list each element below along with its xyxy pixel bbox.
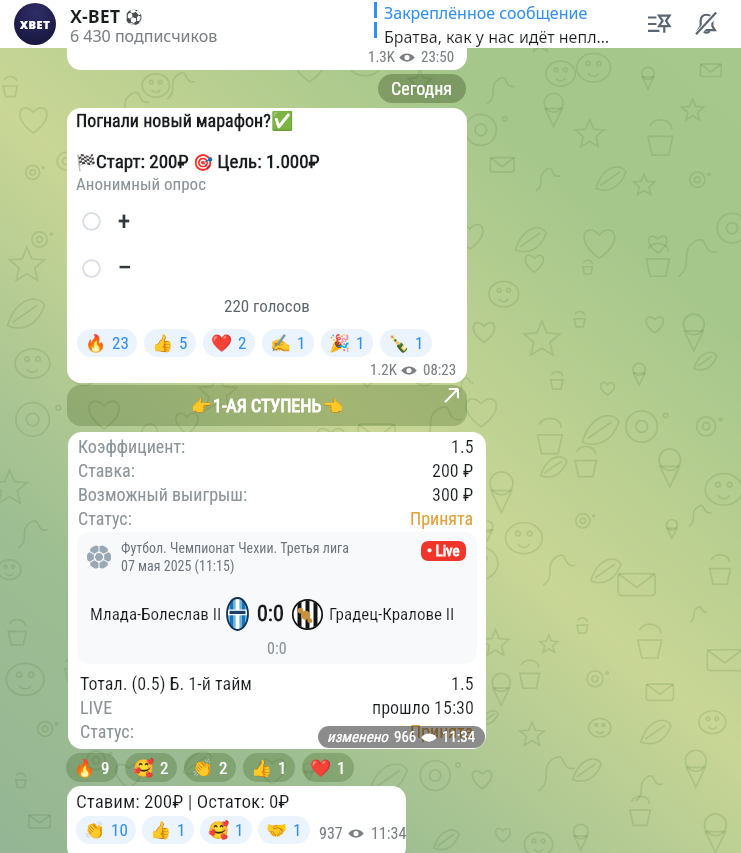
button[interactable]: 👏: [76, 816, 136, 844]
button[interactable]: 🍾: [380, 329, 432, 357]
button[interactable]: ❤️: [302, 753, 354, 782]
staticText: 🏁: [76, 153, 96, 172]
staticText: Тотал. (0.5) Б. 1-й тайм: [80, 673, 252, 694]
button[interactable]: –: [67, 250, 467, 286]
staticText: 👍: [251, 758, 273, 778]
staticText: Братва, как у нас идёт неплохая серия: [384, 26, 612, 48]
staticText: 1: [356, 333, 365, 353]
staticText: XBET: [20, 17, 51, 32]
staticText: 🔥: [85, 333, 107, 353]
staticText: 1.2K: [370, 361, 397, 379]
button[interactable]: ❤️: [203, 329, 255, 357]
staticText: 1: [337, 758, 346, 778]
button[interactable]: 👉: [67, 385, 467, 426]
staticText: 5: [179, 333, 188, 353]
staticText: ❤️: [211, 333, 233, 353]
button[interactable]: Pinned messages: [637, 2, 681, 46]
staticText: 0:0: [257, 601, 284, 627]
button[interactable]: 1.3K: [67, 8, 467, 70]
button[interactable]: Погнали новый марафон?: [67, 108, 467, 383]
staticText: Возможный выигрыш:: [78, 484, 248, 505]
button[interactable]: 🔥: [77, 329, 137, 357]
button[interactable]: Закреплённое сообщение: [374, 2, 612, 48]
staticText: 👏: [192, 758, 214, 778]
button[interactable]: Channel avatar: [14, 3, 56, 45]
staticText: Статус:: [78, 508, 132, 529]
staticText: 👍: [150, 820, 172, 840]
staticText: Старт: 200₽: [96, 150, 193, 172]
button[interactable]: Mute notifications: [684, 2, 728, 46]
staticText: 2: [160, 758, 169, 778]
staticText: 🔥: [74, 758, 96, 778]
staticText: –: [118, 254, 132, 282]
staticText: 6 430 подписчиков: [70, 25, 218, 47]
staticText: 👍: [152, 333, 174, 353]
staticText: 220 голосов: [224, 296, 310, 316]
staticText: 10: [111, 820, 128, 840]
staticText: 07 мая 2025 (11:15): [121, 558, 235, 574]
staticText: 2: [219, 758, 228, 778]
button[interactable]: Ставим: 200₽ | Остаток: 0₽: [67, 786, 406, 853]
button[interactable]: 👍: [243, 753, 295, 782]
staticText: 🍾: [388, 333, 410, 353]
button[interactable]: 🔥: [66, 753, 118, 782]
staticText: Цель: 1.000₽: [213, 150, 320, 172]
button[interactable]: 🥰: [200, 816, 252, 844]
staticText: 👏: [84, 820, 106, 840]
staticText: +: [118, 207, 130, 235]
button[interactable]: 🎉: [321, 329, 373, 357]
staticText: 👈: [322, 396, 344, 416]
staticText: 1.5: [451, 436, 474, 457]
staticText: Принята: [410, 508, 474, 529]
staticText: 1.5: [451, 673, 474, 694]
button[interactable]: 👏: [184, 753, 236, 782]
staticText: изменено: [327, 728, 388, 746]
staticText: 08:23: [423, 361, 457, 379]
staticText: 🎉: [329, 333, 351, 353]
button[interactable]: Коэффициент:: [68, 432, 486, 749]
button[interactable]: X-BET: [70, 4, 143, 29]
staticText: • Live: [427, 542, 460, 560]
staticText: Ставим: 200₽ | Остаток: 0₽: [76, 790, 290, 812]
staticText: 1: [415, 333, 424, 353]
staticText: 1: [297, 333, 306, 353]
staticText: Млада-Болеслав II: [90, 604, 222, 624]
staticText: Сегодня: [391, 78, 453, 99]
staticText: ✍️: [270, 333, 292, 353]
staticText: 🎯: [193, 153, 213, 172]
staticText: Ставка:: [78, 460, 135, 481]
button[interactable]: 🥰: [125, 753, 177, 782]
staticText: Принята: [410, 721, 474, 742]
staticText: 200 ₽: [432, 460, 474, 481]
staticText: 11:34: [371, 824, 406, 843]
button[interactable]: ✍️: [262, 329, 314, 357]
button[interactable]: Футбол. Чемпионат Чехии. Третья лига: [77, 532, 477, 664]
staticText: прошло 15:30: [372, 697, 474, 718]
staticText: Футбол. Чемпионат Чехии. Третья лига: [121, 540, 349, 556]
staticText: ❤️: [310, 758, 332, 778]
staticText: 🥰: [133, 758, 155, 778]
staticText: Погнали новый марафон?: [76, 110, 271, 131]
staticText: 9: [101, 758, 110, 778]
staticText: 0:0: [267, 639, 287, 658]
staticText: 11:34: [442, 728, 476, 746]
button[interactable]: Сегодня: [378, 74, 466, 103]
staticText: 23:50: [421, 48, 455, 66]
staticText: 2: [238, 333, 247, 353]
staticText: X-BET: [70, 4, 121, 29]
button[interactable]: 👍: [144, 329, 196, 357]
staticText: 23: [112, 333, 129, 353]
button[interactable]: 👍: [142, 816, 194, 844]
staticText: 1: [293, 820, 302, 840]
staticText: Статус:: [80, 721, 134, 742]
staticText: 👉: [191, 396, 213, 416]
staticText: 937: [319, 824, 343, 843]
button[interactable]: 🤝: [258, 816, 310, 844]
staticText: 1: [278, 758, 287, 778]
staticText: Закреплённое сообщение: [384, 2, 588, 24]
staticText: 1-АЯ СТУПЕНЬ: [213, 395, 322, 416]
staticText: 1: [235, 820, 244, 840]
button[interactable]: +: [67, 203, 467, 239]
staticText: LIVE: [80, 697, 113, 718]
staticText: ✅: [271, 110, 294, 131]
